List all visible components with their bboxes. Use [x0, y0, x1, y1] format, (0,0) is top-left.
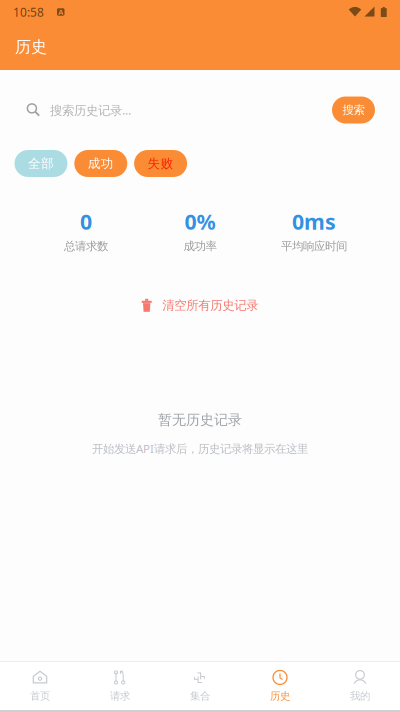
staticText: 平均响应时间 [281, 239, 347, 253]
staticText: A [58, 7, 63, 17]
staticText: 搜索历史记录... [50, 102, 131, 118]
staticText: 清空所有历史记录 [162, 297, 258, 313]
button[interactable]: 首页 [0, 662, 80, 710]
staticText: 我的 [350, 689, 370, 702]
staticText: 失败 [148, 156, 174, 171]
staticText: 暂无历史记录 [158, 411, 242, 429]
staticText: 搜索 [342, 103, 364, 117]
button[interactable]: 成功 [74, 150, 127, 177]
staticText: 0% [184, 207, 215, 236]
staticText: 0 [80, 207, 92, 236]
button[interactable]: 请求 [80, 662, 160, 710]
staticText: 集合 [190, 689, 210, 702]
button[interactable]: 全部 [14, 150, 67, 177]
button[interactable]: 我的 [320, 662, 400, 710]
staticText: 总请求数 [64, 239, 108, 253]
staticText: 历史 [15, 37, 47, 57]
button[interactable]: 历史 [240, 662, 320, 710]
staticText: 0ms [292, 207, 336, 236]
staticText: 开始发送API请求后，历史记录将显示在这里 [92, 441, 308, 456]
staticText: 首页 [30, 689, 50, 702]
staticText: 成功率 [183, 239, 216, 253]
button[interactable]: 失败 [134, 150, 187, 177]
button[interactable]: 清空所有历史记录 [128, 291, 272, 319]
staticText: 成功 [88, 156, 114, 171]
staticText: 请求 [110, 689, 130, 702]
button[interactable]: 搜索 [332, 96, 375, 123]
staticText: 10:58 [13, 4, 44, 20]
button[interactable]: 集合 [160, 662, 240, 710]
staticText: 全部 [28, 156, 54, 171]
staticText: 历史 [270, 689, 290, 702]
